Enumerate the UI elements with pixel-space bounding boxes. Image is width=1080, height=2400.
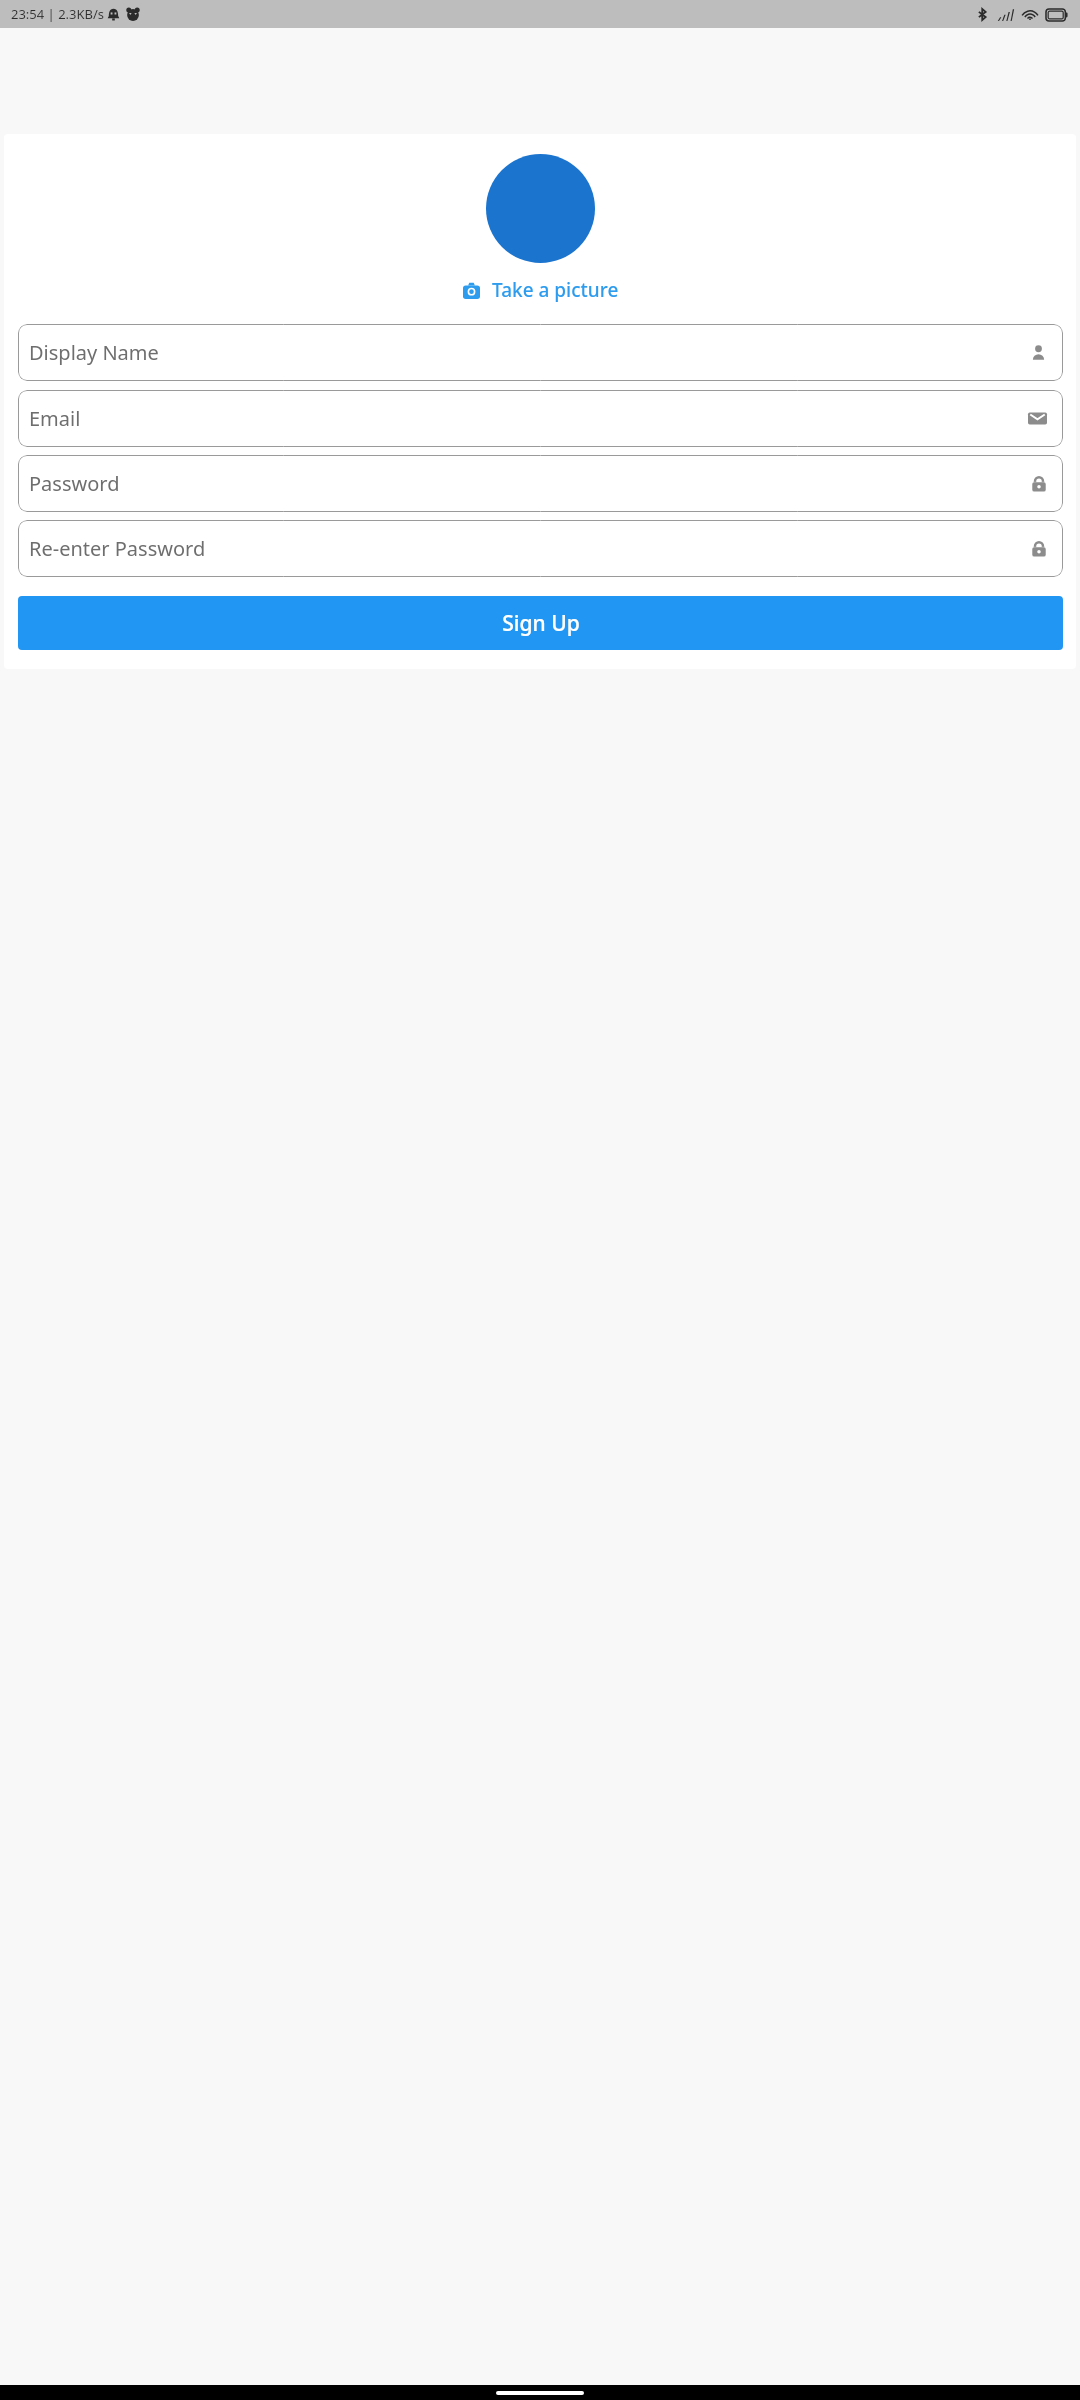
staticText: Sign Up (502, 609, 580, 638)
staticText: Password (29, 470, 120, 497)
staticText: 23:54 | 2.3KB/s (11, 5, 105, 23)
button[interactable]: Password (18, 455, 1063, 512)
staticText: Display Name (29, 339, 159, 366)
button[interactable]: Profile picture (486, 154, 595, 263)
staticText: Take a picture (492, 277, 619, 303)
button[interactable]: Email (18, 390, 1063, 447)
button[interactable]: Take a picture (14, 277, 1067, 303)
staticText: Re-enter Password (29, 535, 206, 562)
staticText: Email (29, 405, 81, 432)
button[interactable]: Sign Up (18, 596, 1063, 650)
button[interactable]: Display Name (18, 324, 1063, 381)
button[interactable]: Re-enter Password (18, 520, 1063, 577)
